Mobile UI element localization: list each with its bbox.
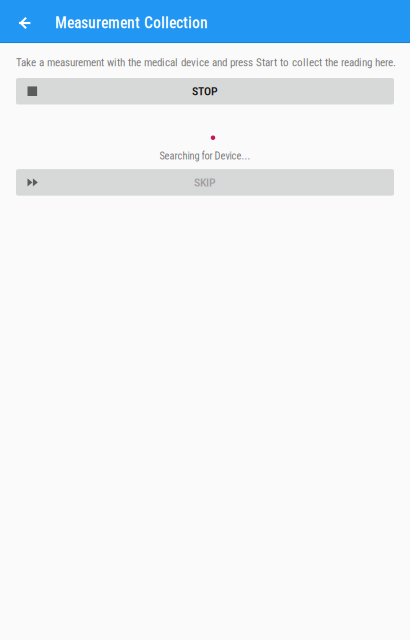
staticText: Take a measurement with the medical devi… [16, 56, 396, 69]
button[interactable]: STOP [16, 78, 394, 104]
staticText: SKIP [194, 175, 216, 189]
staticText: Searching for Device... [159, 150, 250, 162]
button[interactable]: Back [0, 6, 48, 40]
staticText: Measurement Collection [55, 14, 208, 32]
button[interactable]: SKIP [16, 169, 394, 196]
staticText: STOP [192, 84, 218, 98]
